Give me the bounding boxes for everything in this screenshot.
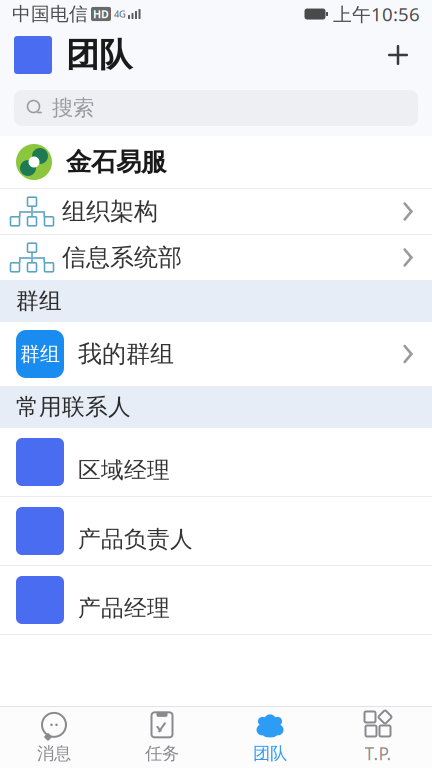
staticText: 群组	[16, 287, 62, 315]
staticText: 区域经理	[78, 456, 170, 484]
button[interactable]: 搜索	[14, 90, 418, 126]
button[interactable]: 任务	[108, 707, 216, 768]
button[interactable]: 添加	[378, 35, 418, 75]
staticText: 消息	[37, 743, 71, 764]
staticText: 群组	[20, 342, 60, 366]
staticText: 中国电信	[12, 2, 88, 25]
staticText: 任务	[145, 743, 179, 764]
button[interactable]: 消息	[0, 707, 108, 768]
button[interactable]: 团队	[216, 707, 324, 768]
staticText: 团队	[253, 743, 287, 764]
button[interactable]: 信息系统部	[0, 235, 432, 280]
button[interactable]: 群组	[0, 322, 432, 386]
button[interactable]: 金石易服	[0, 136, 432, 188]
button[interactable]: 产品负责人	[0, 497, 432, 565]
staticText: HD	[93, 7, 109, 21]
staticText: 产品经理	[78, 594, 170, 622]
button[interactable]: 产品经理	[0, 566, 432, 634]
button[interactable]: 组织架构	[0, 189, 432, 234]
staticText: 团队	[66, 34, 132, 75]
button[interactable]: 区域经理	[0, 428, 432, 496]
button[interactable]: T.P.	[324, 707, 432, 768]
staticText: 我的群组	[78, 339, 174, 369]
staticText: T.P.	[364, 742, 391, 765]
staticText: 组织架构	[62, 197, 158, 226]
staticText: 4G	[114, 8, 126, 20]
button[interactable]: 个人头像	[14, 36, 52, 74]
staticText: 产品负责人	[78, 525, 193, 553]
staticText: 金石易服	[66, 146, 166, 177]
staticText: 搜索	[52, 95, 94, 121]
staticText: 常用联系人	[16, 393, 131, 421]
staticText: 上午10:56	[333, 2, 420, 26]
staticText: 信息系统部	[62, 243, 182, 272]
